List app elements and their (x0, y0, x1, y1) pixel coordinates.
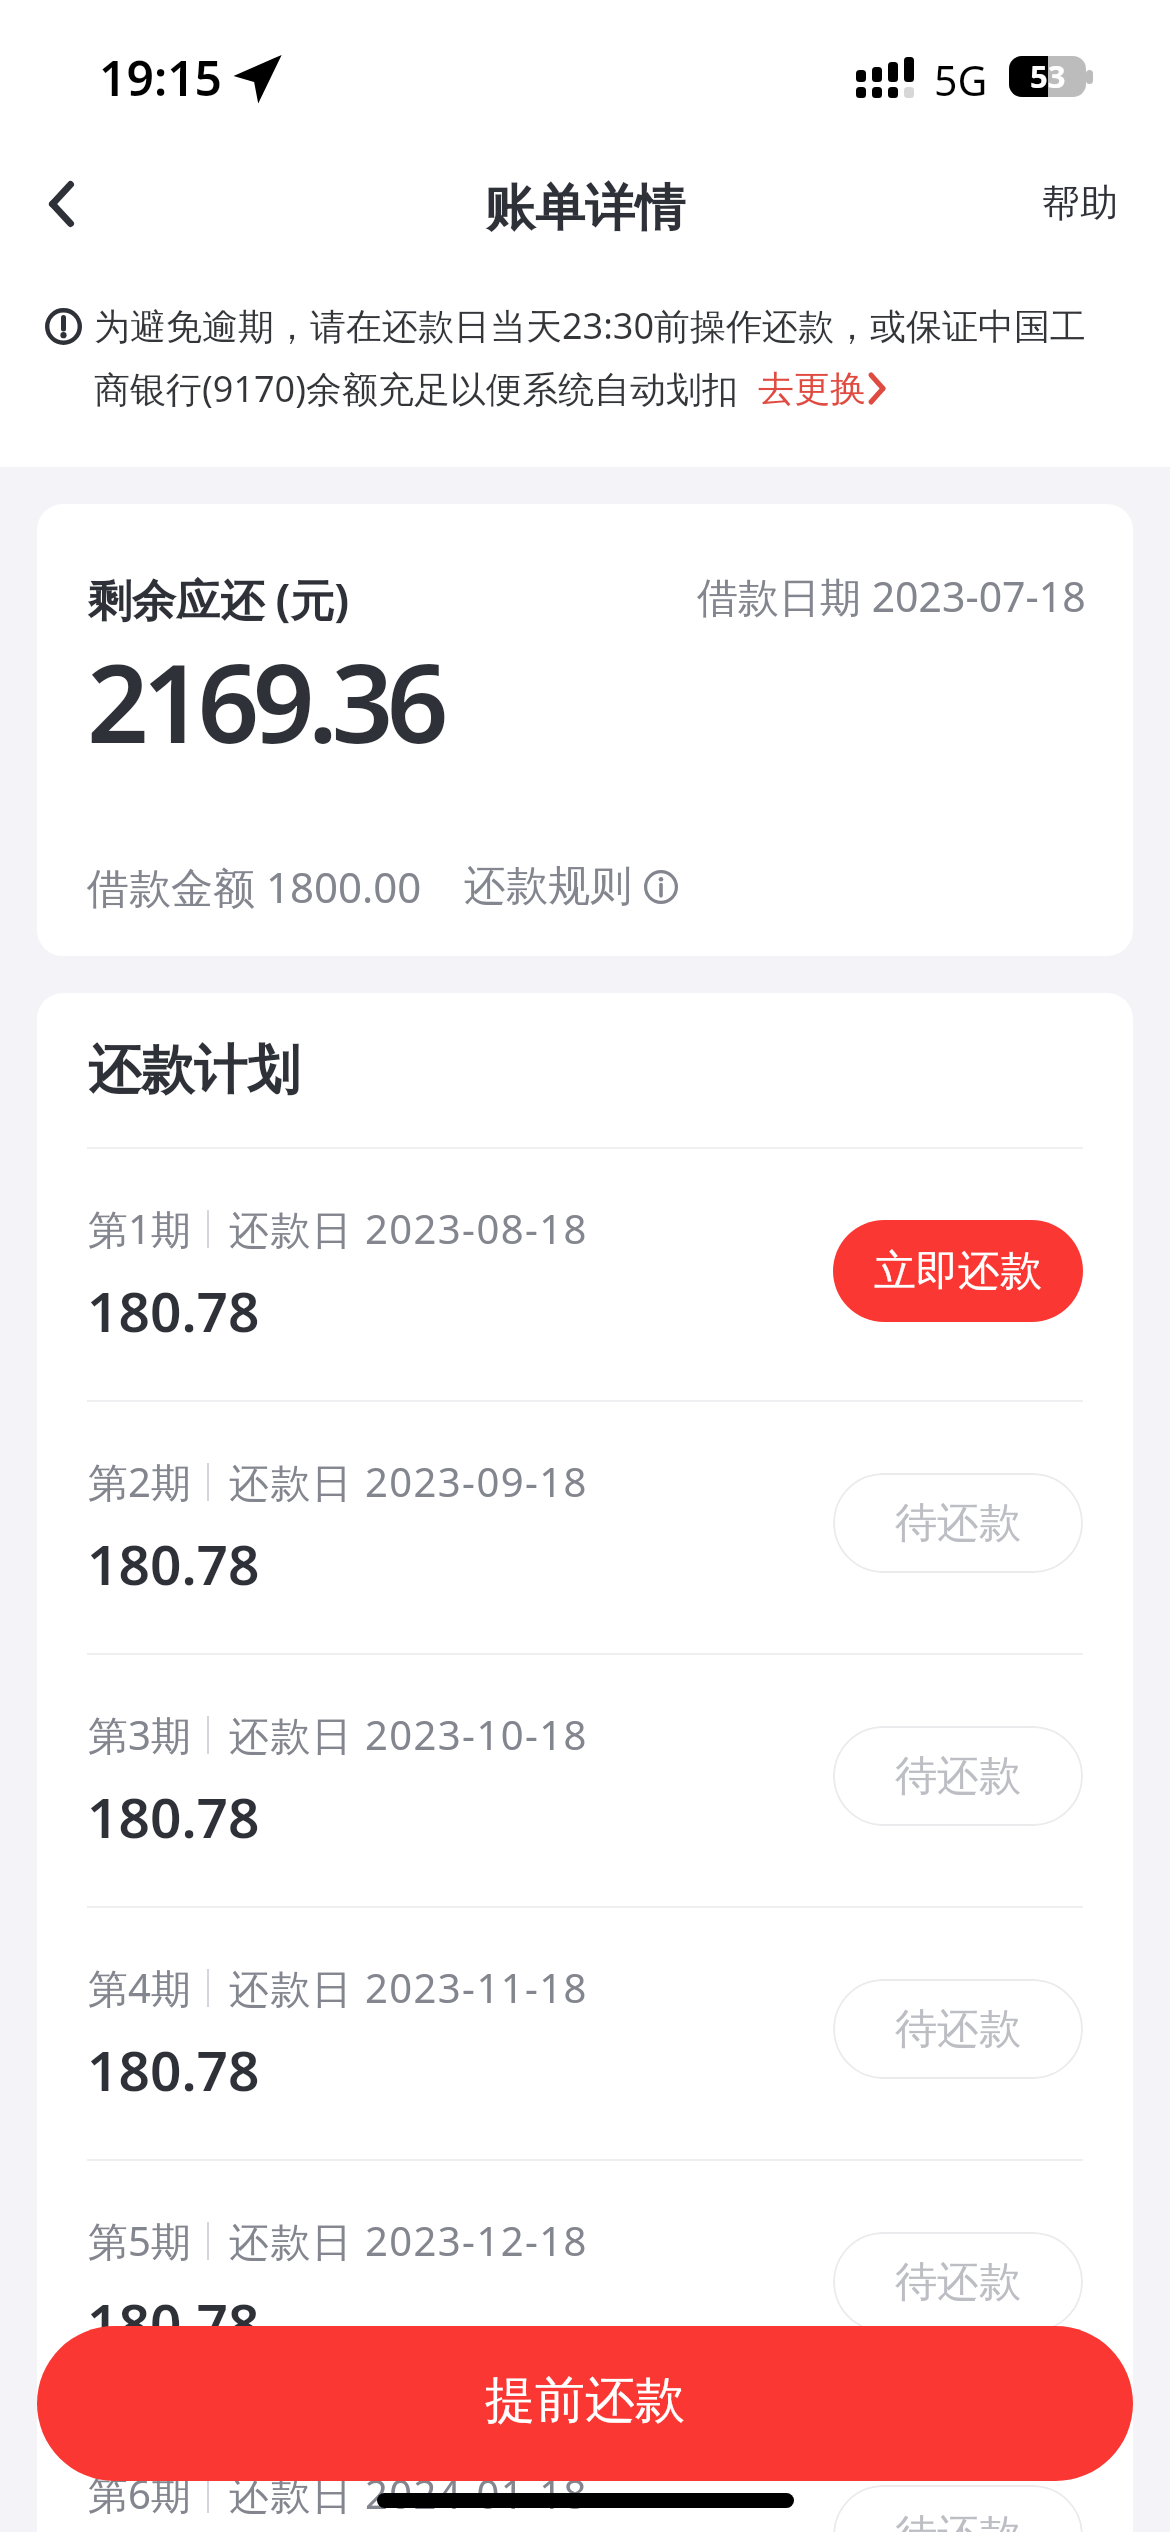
staticText: 5G (934, 52, 988, 108)
staticText: 商银行(9170)余额充足以便系统自动划扣 (94, 364, 738, 413)
button[interactable]: 待还款 (833, 2485, 1083, 2532)
staticText: 立即还款 (874, 1245, 1042, 1298)
button[interactable]: 第3期 (37, 1655, 1133, 1906)
staticText: 2169.36 (87, 628, 442, 775)
button[interactable]: 帮助 (1032, 173, 1128, 233)
button[interactable]: 第2期 (37, 1402, 1133, 1653)
staticText: 待还款 (895, 1750, 1021, 1803)
staticText: 还款计划 (88, 1037, 300, 1104)
button[interactable]: 返回 (19, 162, 103, 246)
staticText: 第6期 (88, 2466, 191, 2521)
staticText: 19:15 (99, 45, 223, 110)
staticText: 还款日 2023-08-18 (229, 1201, 588, 1256)
button[interactable]: 立即还款 (833, 1220, 1083, 1322)
staticText: 还款日 2024-01-18 (229, 2466, 588, 2521)
staticText: 借款金额 1800.00 (87, 858, 422, 915)
staticText: 还款日 2023-10-18 (229, 1707, 588, 1762)
staticText: 帮助 (1042, 179, 1118, 227)
button[interactable]: 去更换 (758, 366, 886, 411)
staticText: 待还款 (895, 2509, 1021, 2532)
staticText: 账单详情 (485, 177, 685, 240)
button[interactable]: 还款规则 (464, 860, 678, 913)
staticText: 第3期 (88, 1707, 191, 1762)
staticText: 180.78 (87, 1779, 260, 1854)
staticText: 提前还款 (485, 2369, 685, 2432)
staticText: 去更换 (758, 366, 866, 411)
staticText: 待还款 (895, 2003, 1021, 2056)
staticText: 待还款 (895, 1497, 1021, 1550)
staticText: 剩余应还 (元) (88, 569, 350, 629)
staticText: 第1期 (88, 1201, 191, 1256)
staticText: 还款日 2023-11-18 (229, 1960, 588, 2015)
staticText: 第4期 (88, 1960, 191, 2015)
button[interactable]: 第4期 (37, 1908, 1133, 2159)
staticText: 第5期 (88, 2213, 191, 2268)
button[interactable]: 待还款 (833, 1726, 1083, 1826)
button[interactable]: 第5期 (37, 2161, 1133, 2412)
staticText: 为避免逾期，请在还款日当天23:30前操作还款，或保证中国工 (94, 301, 1087, 350)
staticText: 待还款 (895, 2256, 1021, 2309)
staticText: 180.78 (87, 2032, 260, 2107)
button[interactable]: 待还款 (833, 2232, 1083, 2332)
button[interactable]: 第6期 (37, 2414, 1133, 2532)
staticText: 还款日 2023-12-18 (229, 2213, 588, 2268)
staticText: 180.78 (87, 1273, 260, 1348)
staticText: 借款日期 2023-07-18 (697, 568, 1086, 624)
staticText: 还款日 2023-09-18 (229, 1454, 588, 1509)
button[interactable]: 第1期 (37, 1149, 1133, 1400)
staticText: 还款规则 (464, 860, 632, 913)
staticText: 第2期 (88, 1454, 191, 1509)
button[interactable]: 待还款 (833, 1473, 1083, 1573)
staticText: 180.78 (87, 1526, 260, 1601)
button[interactable]: 提前还款 (37, 2326, 1133, 2481)
staticText: 180.78 (87, 2285, 260, 2360)
button[interactable]: 待还款 (833, 1979, 1083, 2079)
staticText: 53 (1030, 55, 1066, 96)
